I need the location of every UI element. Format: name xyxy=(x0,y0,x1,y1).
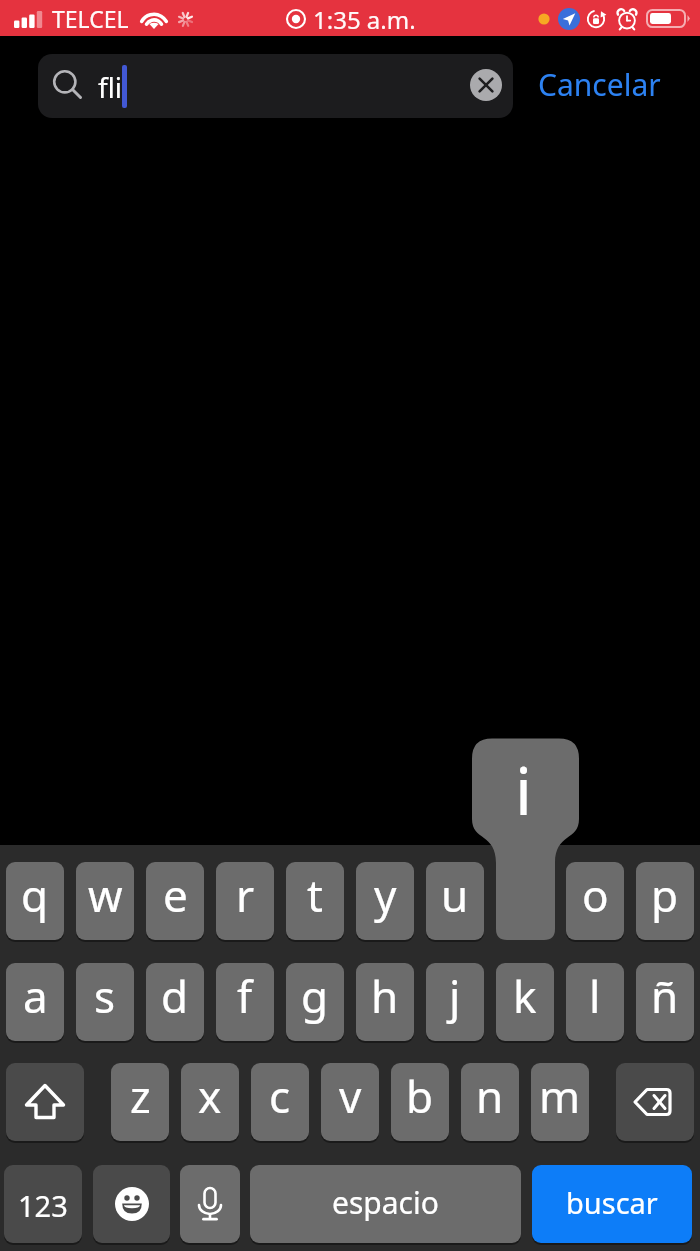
staticText: w xyxy=(88,865,123,925)
staticText: y xyxy=(374,865,397,925)
button[interactable]: i xyxy=(470,735,582,942)
staticText: j xyxy=(449,966,461,1026)
button[interactable]: g xyxy=(286,963,344,1041)
button[interactable]: p xyxy=(636,862,694,940)
staticText: 123 xyxy=(18,1186,68,1225)
staticText: q xyxy=(21,865,49,925)
button[interactable]: q xyxy=(6,862,64,940)
button[interactable]: r xyxy=(216,862,274,940)
button[interactable]: ñ xyxy=(636,963,694,1041)
button[interactable]: fli xyxy=(38,54,513,118)
button[interactable]: f xyxy=(216,963,274,1041)
staticText: z xyxy=(130,1066,151,1126)
staticText: r xyxy=(236,865,255,925)
staticText: d xyxy=(161,966,189,1026)
staticText: v xyxy=(339,1066,362,1126)
staticText: TELCEL xyxy=(52,3,129,34)
staticText: ñ xyxy=(651,966,679,1026)
staticText: g xyxy=(301,966,329,1026)
button[interactable]: x xyxy=(181,1063,239,1141)
button[interactable]: s xyxy=(76,963,134,1041)
button[interactable]: n xyxy=(461,1063,519,1141)
staticText: i xyxy=(515,744,533,834)
button[interactable]: w xyxy=(76,862,134,940)
staticText: e xyxy=(163,865,188,925)
staticText: h xyxy=(371,966,399,1026)
button[interactable]: c xyxy=(251,1063,309,1141)
button[interactable]: u xyxy=(426,862,484,940)
button[interactable]: l xyxy=(566,963,624,1041)
staticText: n xyxy=(476,1066,504,1126)
button[interactable]: Clear text xyxy=(470,69,502,101)
staticText: fli xyxy=(98,68,123,106)
staticText: t xyxy=(307,865,323,925)
staticText: buscar xyxy=(566,1183,658,1222)
button[interactable]: d xyxy=(146,963,204,1041)
button[interactable]: t xyxy=(286,862,344,940)
button[interactable]: buscar xyxy=(532,1165,692,1243)
staticText: espacio xyxy=(332,1182,439,1223)
staticText: k xyxy=(513,966,537,1026)
button[interactable]: k xyxy=(496,963,554,1041)
staticText: a xyxy=(23,966,48,1026)
button[interactable]: h xyxy=(356,963,414,1041)
staticText: u xyxy=(441,865,469,925)
staticText: m xyxy=(539,1066,581,1126)
button[interactable]: 123 xyxy=(4,1165,82,1243)
button[interactable]: b xyxy=(391,1063,449,1141)
button[interactable]: z xyxy=(111,1063,169,1141)
staticText: s xyxy=(94,966,116,1026)
staticText: p xyxy=(651,865,679,925)
staticText: f xyxy=(237,966,253,1026)
button[interactable]: Cancelar xyxy=(538,64,661,105)
staticText: 1:35 a.m. xyxy=(313,3,416,36)
staticText: b xyxy=(406,1066,434,1126)
button[interactable]: e xyxy=(146,862,204,940)
button[interactable]: Emoji xyxy=(93,1165,170,1243)
button[interactable]: espacio xyxy=(250,1165,521,1243)
button[interactable]: j xyxy=(426,963,484,1041)
button[interactable]: v xyxy=(321,1063,379,1141)
button[interactable]: Dictate xyxy=(180,1165,240,1243)
button[interactable]: m xyxy=(531,1063,589,1141)
button[interactable]: a xyxy=(6,963,64,1041)
button[interactable]: Shift xyxy=(6,1063,84,1141)
staticText: c xyxy=(269,1066,291,1126)
staticText: o xyxy=(582,865,609,925)
button[interactable]: Backspace xyxy=(616,1063,694,1141)
staticText: l xyxy=(589,966,601,1026)
staticText: x xyxy=(198,1066,222,1126)
button[interactable]: o xyxy=(566,862,624,940)
button[interactable]: y xyxy=(356,862,414,940)
